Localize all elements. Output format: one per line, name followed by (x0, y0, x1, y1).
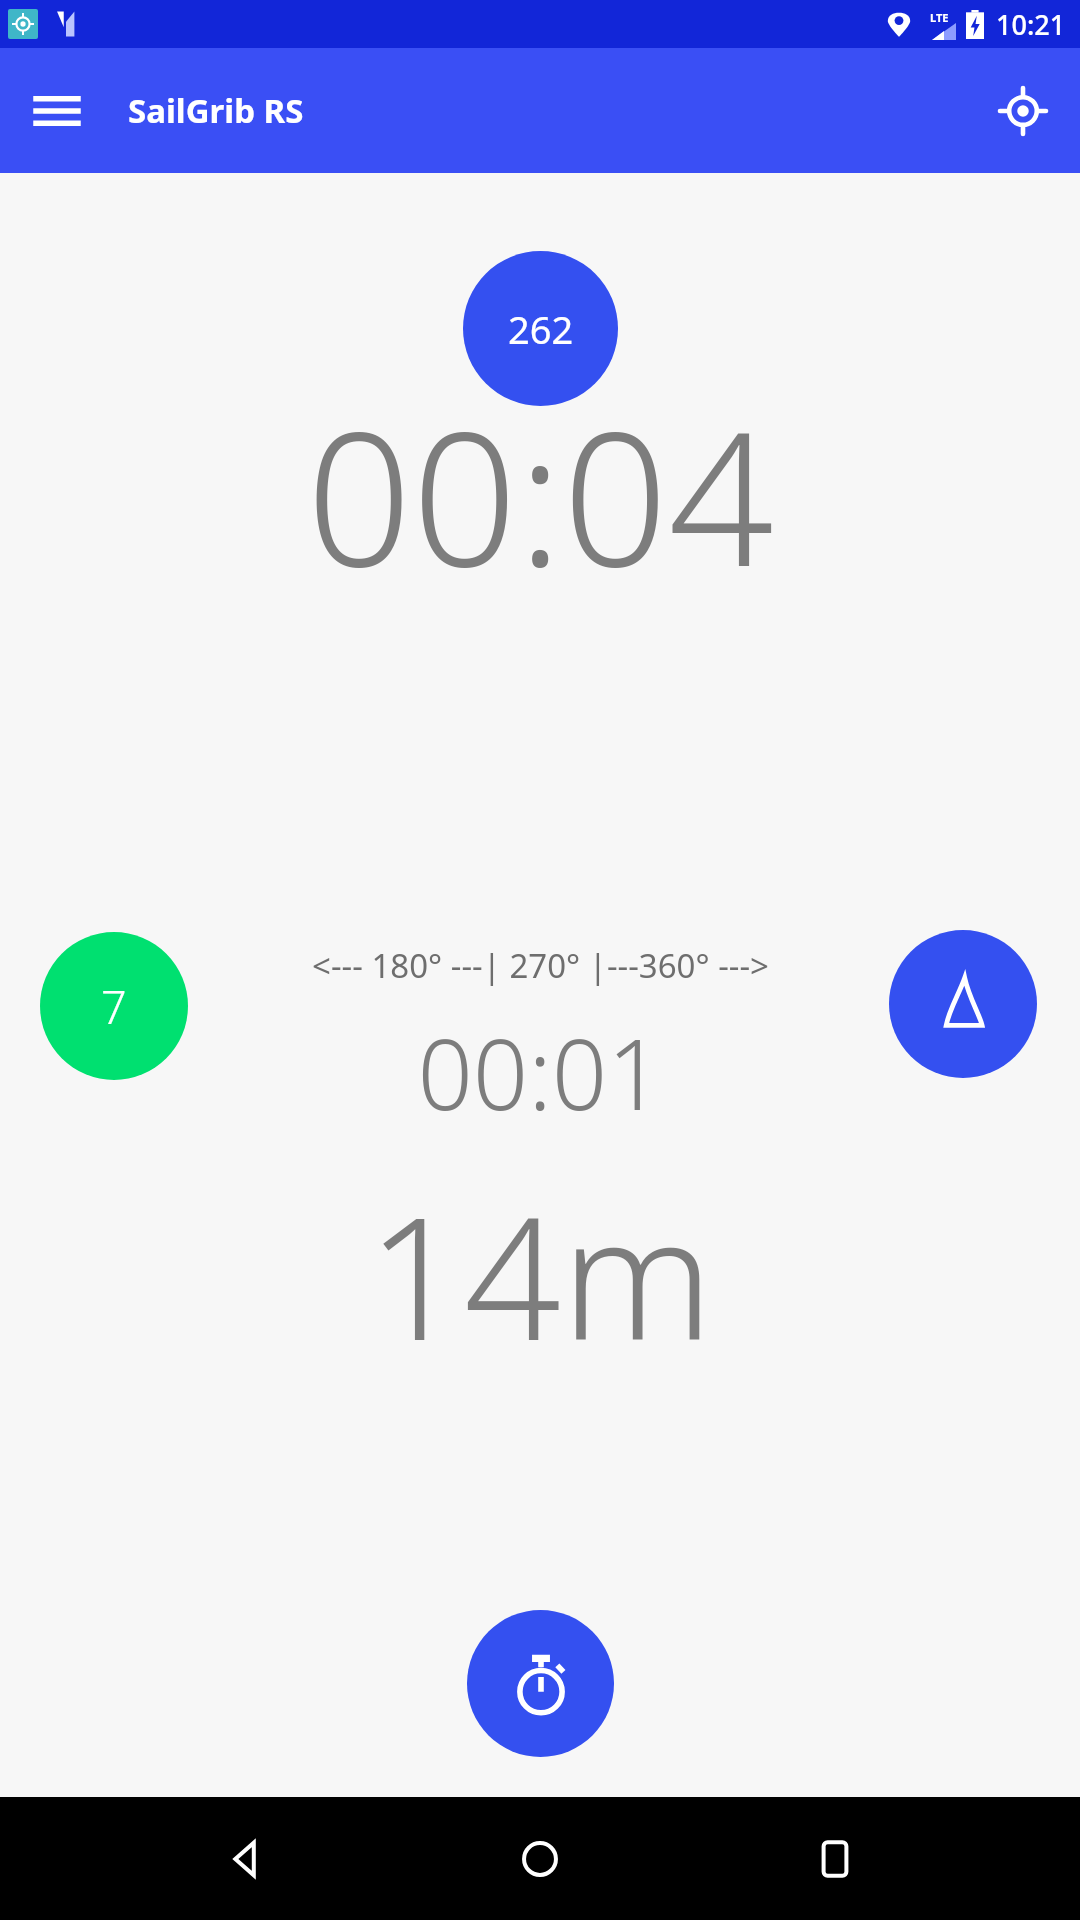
button[interactable]: Back (195, 1809, 295, 1909)
staticText: 10:21 (996, 6, 1066, 43)
button[interactable]: My location (992, 80, 1054, 142)
button[interactable]: Start stopwatch (467, 1610, 614, 1757)
staticText: <--- 180° ---| 270° |---360° ---> (312, 943, 769, 988)
button[interactable]: Home (490, 1809, 590, 1909)
staticText: 14m (367, 1158, 713, 1390)
staticText: LTE (930, 10, 949, 25)
staticText: 262 (508, 303, 574, 355)
staticText: 00:01 (417, 1006, 663, 1138)
button[interactable]: Sail heading (889, 930, 1037, 1078)
button[interactable]: Recent apps (785, 1809, 885, 1909)
button[interactable]: 262 (463, 251, 618, 406)
button[interactable]: 7 (40, 932, 188, 1080)
button[interactable]: Open navigation drawer (26, 80, 88, 142)
staticText: SailGrib RS (128, 88, 304, 133)
staticText: 00:04 (306, 368, 774, 620)
staticText: 7 (101, 976, 127, 1037)
